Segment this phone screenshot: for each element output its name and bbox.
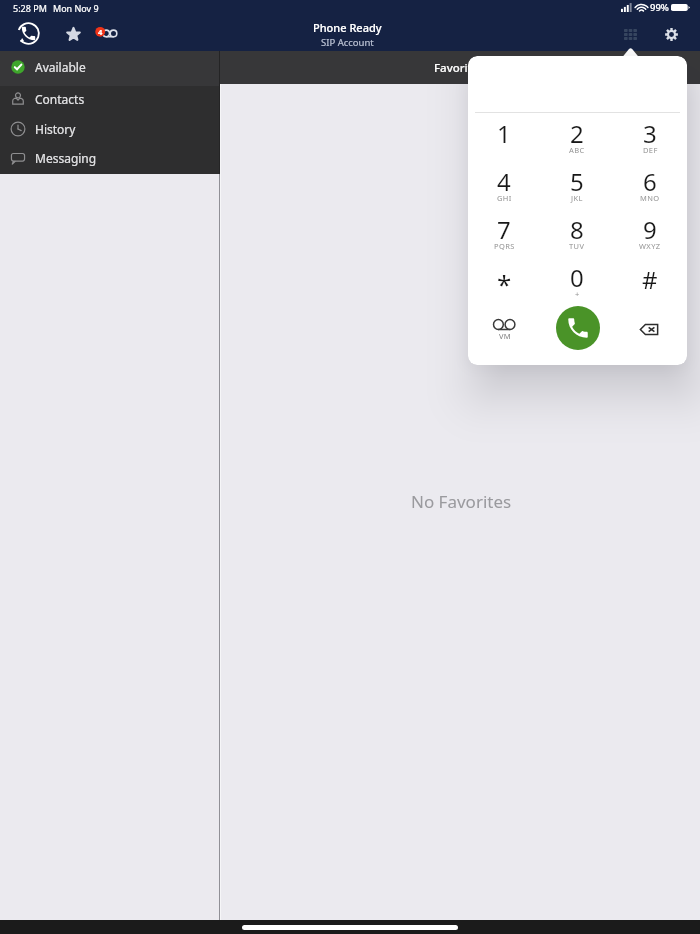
staticText: 3 <box>643 117 657 150</box>
staticText: 0 <box>570 261 584 294</box>
button[interactable]: Favorites <box>60 20 86 46</box>
button[interactable]: 9 <box>614 209 686 257</box>
staticText: DEF <box>643 145 658 155</box>
staticText: MNO <box>640 193 660 203</box>
button[interactable]: Phone app <box>14 19 42 47</box>
staticText: Messaging <box>35 150 97 166</box>
staticText: * <box>497 266 512 300</box>
staticText: 2 <box>570 117 584 150</box>
staticText: 5:28 PM <box>13 2 47 14</box>
button[interactable]: Voicemail <box>468 302 541 360</box>
staticText: JKL <box>571 193 583 203</box>
staticText: No Favorites <box>411 490 512 513</box>
staticText: 1 <box>497 117 511 150</box>
staticText: GHI <box>497 193 512 203</box>
staticText: WXYZ <box>639 241 661 251</box>
staticText: Mon Nov 9 <box>53 2 99 14</box>
button[interactable]: 5 <box>541 161 613 209</box>
button[interactable]: Messaging <box>0 146 219 174</box>
staticText: 99% <box>650 1 669 14</box>
button[interactable]: Settings <box>657 20 685 48</box>
staticText: 4 <box>497 165 511 198</box>
staticText: + <box>575 289 580 299</box>
button[interactable]: 1 <box>468 113 540 161</box>
staticText: ABC <box>569 145 585 155</box>
staticText: 6 <box>643 165 657 198</box>
staticText: PQRS <box>494 241 515 251</box>
button[interactable]: 2 <box>541 113 613 161</box>
staticText: # <box>642 263 658 296</box>
button[interactable]: 6 <box>614 161 686 209</box>
button[interactable]: 0 <box>541 257 613 305</box>
button[interactable]: Backspace <box>613 302 686 360</box>
button[interactable]: Call <box>556 306 600 350</box>
button[interactable]: * <box>468 257 540 305</box>
button[interactable]: History <box>0 116 219 146</box>
button[interactable]: Available <box>0 51 219 86</box>
button[interactable]: Dialpad <box>616 20 644 48</box>
staticText: Available <box>35 59 86 75</box>
staticText: SIP Account <box>321 36 374 49</box>
staticText: 7 <box>497 213 511 246</box>
button[interactable]: 3 <box>614 113 686 161</box>
staticText: TUV <box>569 241 585 251</box>
staticText: VM <box>499 331 511 341</box>
button[interactable]: 7 <box>468 209 540 257</box>
staticText: History <box>35 121 76 137</box>
button[interactable]: 8 <box>541 209 613 257</box>
staticText: 5 <box>570 165 584 198</box>
staticText: 4 <box>98 27 103 37</box>
button[interactable]: 4 <box>468 161 540 209</box>
staticText: 9 <box>643 213 657 246</box>
button[interactable]: Contacts <box>0 86 219 116</box>
staticText: 8 <box>570 213 584 246</box>
button[interactable]: Voicemail <box>92 22 122 46</box>
staticText: Favorites <box>434 60 485 76</box>
button[interactable]: # <box>614 257 686 305</box>
staticText: Phone Ready <box>313 20 382 35</box>
staticText: Contacts <box>35 91 85 107</box>
